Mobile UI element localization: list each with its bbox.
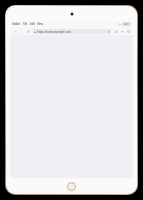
staticText: Edit <box>30 22 35 26</box>
staticText: File <box>23 22 28 26</box>
staticText: https://www.example.com <box>37 30 71 34</box>
button[interactable]: Share <box>113 28 119 35</box>
button[interactable]: Show Tabs <box>125 28 131 35</box>
button[interactable]: Home <box>67 182 76 191</box>
button[interactable]: Forward <box>18 28 24 35</box>
button[interactable]: Bookmarks <box>25 28 31 35</box>
staticText: View <box>37 22 43 26</box>
button[interactable]: Back <box>12 28 18 35</box>
button[interactable]: New Tab <box>119 28 125 35</box>
button[interactable]: https://www.example.com <box>33 29 111 34</box>
staticText: Safari <box>12 22 21 26</box>
